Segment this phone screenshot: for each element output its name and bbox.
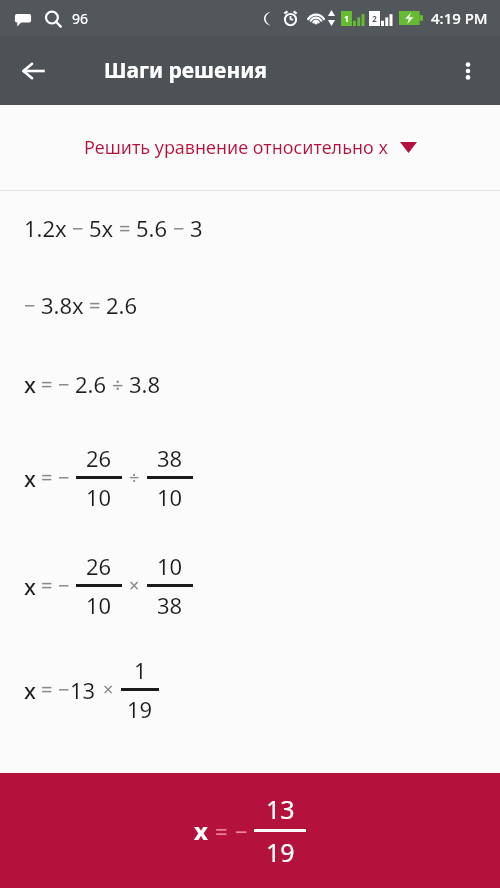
- staticText: 38: [157, 443, 183, 473]
- staticText: ÷: [129, 465, 140, 490]
- button[interactable]: 1.2x: [0, 191, 500, 265]
- staticText: −: [24, 292, 36, 319]
- button[interactable]: x: [0, 639, 500, 739]
- staticText: 19: [127, 694, 153, 724]
- button[interactable]: x: [0, 773, 500, 888]
- staticText: 3: [190, 213, 203, 243]
- button[interactable]: −: [0, 265, 500, 345]
- staticText: 10: [157, 551, 183, 581]
- staticText: x: [24, 369, 36, 399]
- staticText: 1: [344, 13, 349, 24]
- staticText: 2.6: [75, 369, 107, 399]
- staticText: 10: [86, 482, 112, 512]
- staticText: 5x: [89, 213, 114, 243]
- button[interactable]: x: [0, 531, 500, 639]
- staticText: 3.8: [129, 369, 161, 399]
- staticText: −: [72, 215, 84, 242]
- button[interactable]: Решить уравнение относительно x: [0, 105, 500, 190]
- staticText: =: [41, 572, 53, 599]
- staticText: 26: [86, 443, 112, 473]
- staticText: 38: [157, 590, 183, 620]
- staticText: 2.6: [106, 290, 138, 320]
- staticText: ×: [129, 573, 140, 598]
- staticText: x: [24, 675, 36, 705]
- button[interactable]: x: [0, 345, 500, 423]
- button[interactable]: x: [0, 423, 500, 531]
- staticText: −: [58, 676, 70, 703]
- staticText: x: [24, 463, 36, 493]
- staticText: 1.2x: [24, 213, 67, 243]
- staticText: 5.6: [136, 213, 168, 243]
- staticText: =: [89, 292, 101, 319]
- staticText: 10: [157, 482, 183, 512]
- staticText: 10: [86, 590, 112, 620]
- staticText: 19: [266, 835, 295, 869]
- button[interactable]: More options: [444, 47, 492, 95]
- staticText: 13: [266, 792, 295, 826]
- staticText: −: [58, 371, 70, 398]
- staticText: Решить уравнение относительно x: [84, 135, 388, 160]
- staticText: −: [235, 816, 248, 846]
- staticText: 4:19 PM: [431, 8, 488, 28]
- staticText: 13: [70, 675, 96, 705]
- staticText: =: [119, 215, 131, 242]
- staticText: =: [41, 464, 53, 491]
- staticText: Шаги решения: [104, 56, 268, 85]
- staticText: x: [194, 814, 208, 847]
- button[interactable]: Back: [10, 47, 58, 95]
- staticText: −: [58, 464, 70, 491]
- staticText: ×: [103, 677, 114, 702]
- staticText: 1: [134, 655, 147, 685]
- staticText: 26: [86, 551, 112, 581]
- staticText: −: [173, 215, 185, 242]
- staticText: x: [24, 571, 36, 601]
- staticText: =: [41, 371, 53, 398]
- staticText: 2: [372, 13, 377, 24]
- staticText: =: [215, 816, 228, 846]
- staticText: =: [41, 676, 53, 703]
- staticText: −: [58, 572, 70, 599]
- staticText: 3.8x: [41, 290, 84, 320]
- staticText: ÷: [112, 371, 124, 398]
- staticText: 96: [72, 9, 89, 28]
